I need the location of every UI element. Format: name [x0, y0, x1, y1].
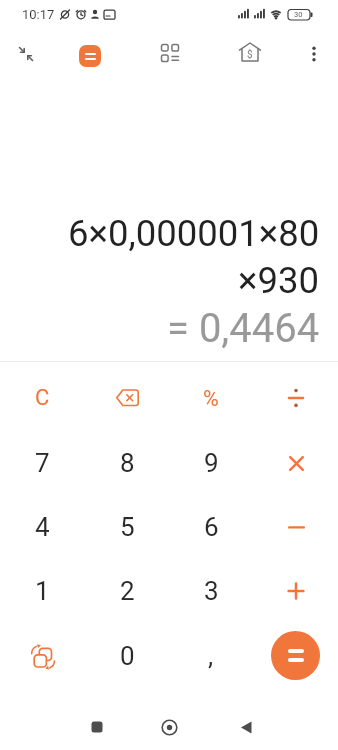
- button[interactable]: [271, 631, 320, 680]
- button[interactable]: [264, 499, 328, 555]
- button[interactable]: 9: [179, 435, 243, 491]
- button[interactable]: [294, 34, 334, 74]
- button[interactable]: 6: [179, 499, 243, 555]
- staticText: 5: [120, 512, 135, 542]
- staticText: 30: [294, 10, 303, 19]
- button[interactable]: ,: [179, 628, 243, 684]
- staticText: C: [35, 385, 50, 411]
- staticText: $: [247, 49, 253, 61]
- button[interactable]: [264, 563, 328, 619]
- button[interactable]: 2: [95, 563, 159, 619]
- button[interactable]: [10, 628, 74, 684]
- button[interactable]: 7: [10, 435, 74, 491]
- button[interactable]: [6, 34, 46, 74]
- staticText: 6: [204, 512, 219, 542]
- button[interactable]: [226, 707, 266, 747]
- button[interactable]: 0: [95, 628, 159, 684]
- staticText: 1: [35, 576, 50, 606]
- button[interactable]: [149, 707, 189, 747]
- staticText: 2: [120, 576, 135, 606]
- button[interactable]: [77, 707, 117, 747]
- staticText: 10:17: [22, 7, 55, 22]
- button[interactable]: 5: [95, 499, 159, 555]
- staticText: 6×0,000001×80: [68, 212, 320, 255]
- button[interactable]: $: [230, 33, 270, 73]
- staticText: 0: [120, 641, 135, 671]
- button[interactable]: [264, 435, 328, 491]
- button[interactable]: 4: [10, 499, 74, 555]
- staticText: ×930: [238, 259, 320, 302]
- button[interactable]: [70, 36, 110, 76]
- staticText: 8: [120, 448, 135, 478]
- button[interactable]: [95, 370, 159, 426]
- button[interactable]: C: [10, 370, 74, 426]
- staticText: 4: [35, 512, 50, 542]
- button[interactable]: 8: [95, 435, 159, 491]
- button[interactable]: 1: [10, 563, 74, 619]
- staticText: 7: [35, 448, 50, 478]
- button[interactable]: %: [179, 370, 243, 426]
- button[interactable]: [150, 33, 190, 73]
- button[interactable]: 3: [179, 563, 243, 619]
- button[interactable]: [264, 370, 328, 426]
- staticText: = 0,4464: [167, 305, 320, 352]
- staticText: 3: [204, 576, 219, 606]
- staticText: 9: [204, 448, 219, 478]
- staticText: %: [203, 386, 219, 411]
- staticText: ,: [208, 641, 214, 671]
